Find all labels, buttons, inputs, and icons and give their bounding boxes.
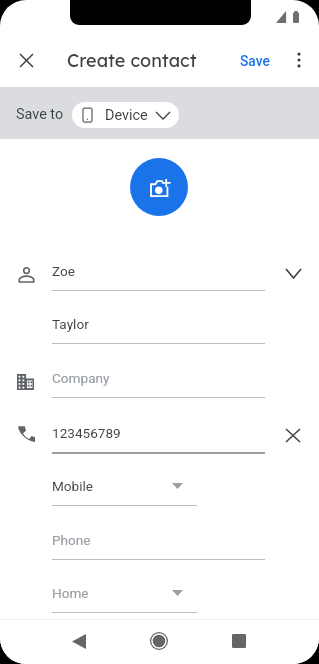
- staticText: Create contact: [67, 49, 197, 72]
- button[interactable]: Expand name fields: [277, 257, 309, 289]
- button[interactable]: Home: [0, 572, 319, 613]
- staticText: Device: [105, 107, 148, 124]
- button[interactable]: Taylor: [0, 303, 319, 344]
- staticText: Company: [52, 370, 110, 386]
- button[interactable]: Save: [236, 51, 274, 71]
- button[interactable]: Phone: [0, 519, 319, 560]
- staticText: 123456789: [52, 425, 121, 441]
- button[interactable]: Device: [72, 102, 179, 128]
- button[interactable]: Mobile: [0, 465, 319, 506]
- staticText: Taylor: [52, 316, 89, 332]
- staticText: Save to: [16, 106, 64, 123]
- button[interactable]: Clear phone number: [277, 419, 309, 451]
- staticText: Phone: [52, 532, 91, 548]
- button[interactable]: Close: [8, 42, 44, 78]
- staticText: Save: [240, 53, 270, 69]
- button[interactable]: Back: [59, 621, 99, 661]
- staticText: Home: [52, 585, 89, 601]
- button[interactable]: Add photo: [130, 158, 188, 216]
- button[interactable]: Zoe: [0, 250, 319, 291]
- button[interactable]: Recent apps: [219, 621, 259, 661]
- staticText: Zoe: [52, 263, 75, 279]
- button[interactable]: More options: [281, 42, 317, 78]
- button[interactable]: 123456789: [0, 412, 319, 453]
- button[interactable]: Company: [0, 357, 319, 398]
- button[interactable]: Home: [139, 621, 179, 661]
- staticText: Mobile: [52, 478, 94, 494]
